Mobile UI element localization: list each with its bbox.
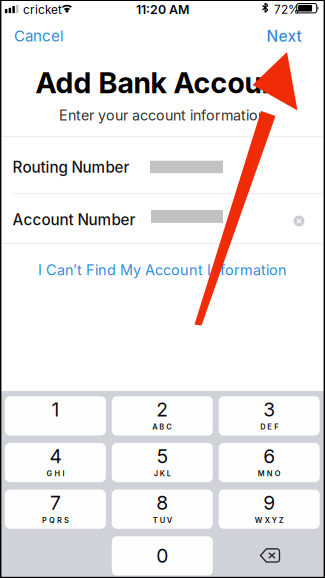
staticText: 72% bbox=[274, 2, 300, 17]
button[interactable]: 3 bbox=[219, 396, 320, 435]
button[interactable]: 5 bbox=[112, 443, 213, 482]
button[interactable]: Routing Number bbox=[0, 137, 325, 193]
staticText: J K L bbox=[154, 469, 171, 478]
staticText: P Q R S bbox=[42, 516, 69, 525]
staticText: 5 bbox=[157, 444, 168, 468]
staticText: Next bbox=[266, 27, 301, 45]
staticText: 4 bbox=[49, 444, 61, 468]
button[interactable]: 4 bbox=[5, 443, 106, 482]
button[interactable]: 2 bbox=[112, 396, 213, 435]
staticText: I Can’t Find My Account Information bbox=[38, 261, 287, 279]
button[interactable]: 7 bbox=[5, 490, 106, 529]
button[interactable]: 1 bbox=[5, 396, 106, 435]
button[interactable]: Clear text bbox=[288, 210, 310, 232]
button[interactable]: 8 bbox=[112, 490, 213, 529]
button[interactable]: Delete bbox=[219, 536, 320, 575]
staticText: 9 bbox=[263, 491, 275, 514]
staticText: 0 bbox=[156, 544, 168, 567]
staticText: A B C bbox=[152, 422, 172, 431]
staticText: T U V bbox=[153, 516, 172, 525]
staticText: 3 bbox=[263, 398, 275, 421]
staticText: Routing Number bbox=[12, 158, 129, 176]
staticText: Add Bank Account bbox=[35, 65, 289, 100]
staticText: Cancel bbox=[14, 27, 64, 45]
staticText: Enter your account information bbox=[59, 107, 266, 124]
staticText: 1 bbox=[51, 398, 59, 421]
staticText: D E F bbox=[260, 422, 278, 431]
button[interactable]: I Can’t Find My Account Information bbox=[0, 257, 325, 283]
button[interactable]: Cancel bbox=[6, 24, 72, 48]
staticText: cricket bbox=[23, 3, 62, 17]
staticText: Account Number bbox=[12, 210, 135, 229]
staticText: 2 bbox=[156, 398, 168, 421]
button[interactable]: 9 bbox=[219, 490, 320, 529]
staticText: 8 bbox=[156, 491, 168, 514]
staticText: M N O bbox=[258, 469, 281, 478]
button[interactable]: 0 bbox=[112, 536, 213, 575]
button[interactable]: Account Number bbox=[0, 194, 325, 243]
staticText: 7 bbox=[50, 491, 61, 514]
staticText: 11:20 AM bbox=[136, 2, 189, 17]
staticText: W X Y Z bbox=[255, 516, 284, 525]
staticText: G H I bbox=[46, 469, 64, 478]
staticText: 6 bbox=[263, 444, 275, 468]
button[interactable]: 6 bbox=[219, 443, 320, 482]
button[interactable]: Next bbox=[258, 24, 310, 48]
